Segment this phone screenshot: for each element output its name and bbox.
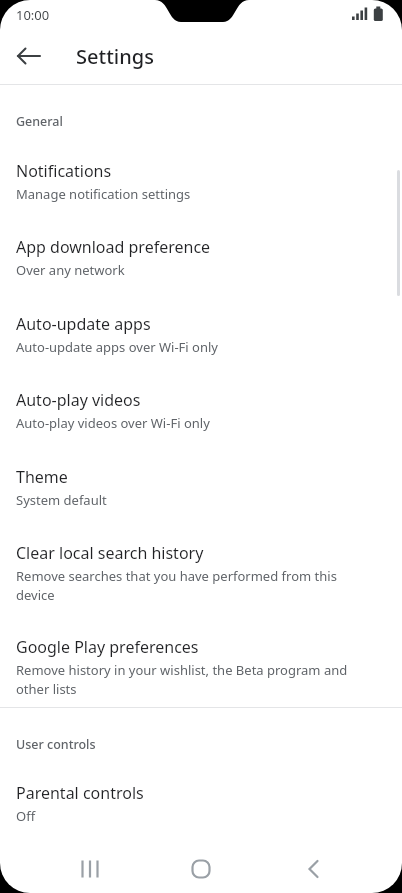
staticText: Auto-update apps over Wi-Fi only xyxy=(16,338,366,356)
staticText: Google Play preferences xyxy=(16,636,199,658)
staticText: Remove history in your wishlist, the Bet… xyxy=(16,661,366,698)
staticText: Manage notification settings xyxy=(16,185,366,203)
staticText: Theme xyxy=(16,466,68,488)
staticText: Clear local search history xyxy=(16,542,204,564)
button[interactable]: Clear local search history xyxy=(0,537,402,617)
staticText: Auto-update apps xyxy=(16,313,151,335)
staticText: Off xyxy=(16,807,366,825)
staticText: System default xyxy=(16,491,366,509)
button[interactable]: Parental controls xyxy=(0,777,402,835)
staticText: Parental controls xyxy=(16,782,144,804)
button[interactable]: App download preference xyxy=(0,231,402,289)
button[interactable]: Google Play preferences xyxy=(0,631,402,711)
button[interactable]: Home xyxy=(173,845,229,893)
button[interactable]: Back xyxy=(284,845,340,893)
staticText: Settings xyxy=(76,43,154,70)
button[interactable]: Auto-update apps xyxy=(0,308,402,366)
button[interactable]: Auto-play videos xyxy=(0,384,402,442)
button[interactable]: Theme xyxy=(0,461,402,519)
staticText: Remove searches that you have performed … xyxy=(16,567,364,604)
staticText: 10:00 xyxy=(16,6,50,24)
button[interactable]: Notifications xyxy=(0,155,402,213)
button[interactable]: Back xyxy=(8,36,50,76)
staticText: Auto-play videos xyxy=(16,389,141,411)
staticText: Notifications xyxy=(16,160,112,182)
staticText: Auto-play videos over Wi-Fi only xyxy=(16,414,366,432)
staticText: User controls xyxy=(16,736,96,753)
staticText: Over any network xyxy=(16,261,366,279)
staticText: App download preference xyxy=(16,236,211,258)
button[interactable]: Recents xyxy=(62,845,118,893)
staticText: General xyxy=(16,113,63,130)
